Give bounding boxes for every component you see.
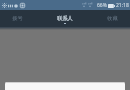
staticText: 66% [97,2,107,9]
staticText: 联系人 [57,15,73,22]
button[interactable]: 收藏 [95,10,130,27]
button[interactable]: 联系人 [43,10,87,27]
staticText: 收藏 [107,15,118,22]
button[interactable]: 拨号 [0,10,35,27]
staticText: 21:18 [116,2,129,9]
button[interactable]: Bottom sheet [5,82,125,90]
staticText: 拨号 [12,15,23,22]
